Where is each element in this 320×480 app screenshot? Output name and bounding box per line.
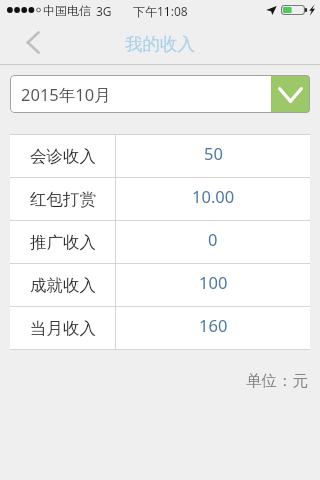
staticText: 红包打赏 xyxy=(30,189,96,210)
staticText: 2015年10月 xyxy=(21,83,271,106)
staticText: 推广收入 xyxy=(30,232,96,253)
button[interactable]: Back xyxy=(0,20,56,64)
button[interactable]: 推广收入 xyxy=(10,221,310,263)
staticText: 下午11:08 xyxy=(133,3,188,19)
button[interactable]: 2015年10月 xyxy=(10,75,310,113)
staticText: 当月收入 xyxy=(30,318,96,339)
staticText: 0 xyxy=(208,228,218,250)
staticText: 100 xyxy=(199,271,228,293)
staticText: 会诊收入 xyxy=(30,146,96,167)
staticText: 我的收入 xyxy=(125,33,195,55)
button[interactable]: Select month xyxy=(271,75,310,113)
staticText: 中国电信 xyxy=(43,3,91,18)
staticText: 单位：元 xyxy=(246,371,308,391)
staticText: 成就收入 xyxy=(30,275,96,296)
staticText: 10.00 xyxy=(192,185,235,207)
staticText: 160 xyxy=(199,314,228,336)
button[interactable]: 当月收入 xyxy=(10,307,310,349)
button[interactable]: 红包打赏 xyxy=(10,178,310,220)
staticText: 3G xyxy=(96,3,112,19)
staticText: 50 xyxy=(204,142,223,164)
button[interactable]: 成就收入 xyxy=(10,264,310,306)
button[interactable]: 会诊收入 xyxy=(10,135,310,177)
